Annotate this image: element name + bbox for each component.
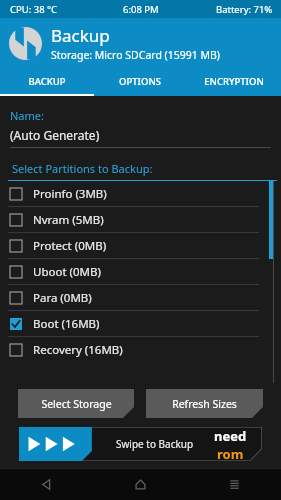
staticText: Boot (16MB) — [33, 316, 100, 332]
button[interactable]: Recovery (16MB) — [0, 337, 281, 362]
button[interactable]: BACKUP — [0, 68, 93, 94]
button[interactable]: Refresh Sizes — [146, 389, 263, 418]
button[interactable]: Home — [93, 468, 187, 500]
staticText: Storage: Micro SDCard (15991 MB) — [51, 48, 221, 62]
button[interactable]: Back — [0, 468, 93, 500]
button[interactable]: (Auto Generate) — [10, 127, 271, 143]
staticText: (Auto Generate) — [10, 127, 100, 143]
button[interactable]: Para (0MB) — [0, 285, 281, 310]
staticText: ENCRYPTION — [204, 75, 264, 88]
button[interactable]: OPTIONS — [93, 68, 187, 94]
button[interactable]: Boot (16MB) — [0, 311, 281, 336]
staticText: Battery: 71% — [216, 3, 273, 16]
staticText: OPTIONS — [119, 75, 161, 88]
button[interactable]: Select Storage — [18, 389, 134, 418]
staticText: 6:08 PM — [123, 3, 159, 16]
button[interactable]: Recent apps — [187, 468, 281, 500]
staticText: Para (0MB) — [33, 290, 92, 306]
button[interactable]: Nvram (5MB) — [0, 207, 281, 232]
staticText: BACKUP — [28, 75, 66, 88]
staticText: Refresh Sizes — [172, 397, 237, 411]
staticText: Backup — [51, 24, 110, 47]
staticText: Nvram (5MB) — [33, 212, 104, 228]
staticText: Select Storage — [41, 397, 112, 411]
staticText: Select Partitions to Backup: — [12, 161, 153, 176]
staticText: need — [214, 427, 247, 445]
button[interactable]: Swipe to Backup — [19, 427, 262, 461]
button[interactable]: Protect (0MB) — [0, 233, 281, 258]
staticText: Proinfo (3MB) — [33, 186, 107, 202]
staticText: Recovery (16MB) — [33, 342, 123, 358]
button[interactable]: Uboot (0MB) — [0, 259, 281, 284]
staticText: Uboot (0MB) — [33, 264, 101, 280]
staticText: Protect (0MB) — [33, 238, 107, 254]
button[interactable]: ENCRYPTION — [187, 68, 281, 94]
staticText: Name: — [10, 108, 44, 123]
button[interactable]: Proinfo (3MB) — [0, 181, 281, 206]
staticText: Swipe to Backup — [116, 437, 194, 451]
staticText: rom — [217, 445, 244, 461]
staticText: CPU: 38 °C — [10, 3, 58, 16]
